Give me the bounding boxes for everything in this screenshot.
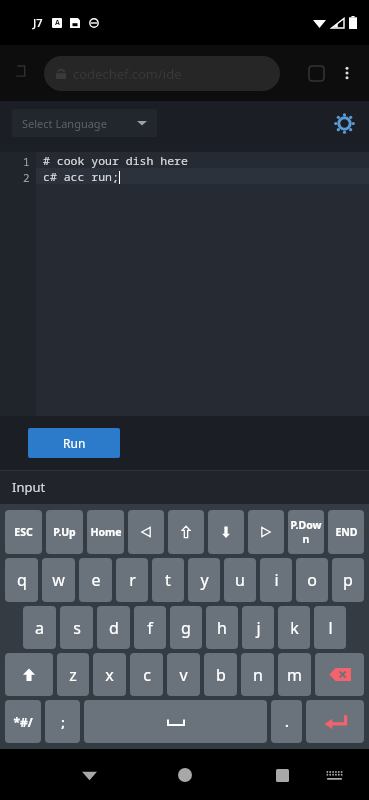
staticText: d	[109, 617, 119, 639]
button[interactable]: g	[170, 606, 202, 649]
button[interactable]: ;	[45, 700, 80, 743]
button[interactable]: .	[271, 700, 302, 743]
staticText: b	[216, 664, 226, 686]
staticText: codechef.com/ide	[73, 65, 182, 83]
staticText: v	[179, 664, 188, 686]
button[interactable]: Run	[28, 428, 120, 458]
button[interactable]: y	[188, 558, 220, 602]
button[interactable]: Left	[128, 510, 164, 554]
button[interactable]: END	[328, 510, 364, 554]
staticText: t	[165, 569, 171, 591]
button[interactable]: d	[97, 606, 130, 649]
button[interactable]: c	[130, 653, 163, 696]
button[interactable]: codechef.com/ide	[44, 56, 280, 91]
staticText: w	[52, 569, 65, 591]
button[interactable]: p	[332, 558, 364, 602]
button[interactable]: j	[242, 606, 274, 649]
button[interactable]: z	[57, 653, 89, 696]
button[interactable]: More options	[333, 59, 361, 87]
staticText: h	[217, 617, 227, 639]
staticText: p	[343, 569, 353, 591]
button[interactable]: m	[278, 653, 311, 696]
staticText: z	[69, 664, 77, 686]
staticText: J7	[33, 15, 43, 30]
staticText: Home	[90, 525, 122, 539]
staticText: s	[73, 617, 81, 639]
staticText: c# acc run;	[43, 169, 119, 185]
staticText: l	[328, 617, 333, 639]
button[interactable]: Switch keyboard	[319, 760, 349, 790]
staticText: i	[274, 569, 279, 591]
button[interactable]: r	[116, 558, 148, 602]
button[interactable]: f	[134, 606, 166, 649]
staticText: u	[235, 569, 245, 591]
staticText: a	[35, 617, 44, 639]
button[interactable]: Home	[168, 758, 202, 792]
staticText: A	[55, 18, 60, 28]
staticText: r	[129, 569, 136, 591]
button[interactable]: Right	[248, 510, 284, 554]
button[interactable]: h	[206, 606, 238, 649]
button[interactable]: P.Down	[288, 510, 324, 554]
button[interactable]: Recent apps	[265, 758, 299, 792]
staticText: k	[290, 617, 299, 639]
button[interactable]: Enter	[306, 700, 364, 743]
staticText: .	[285, 714, 289, 730]
staticText: n	[253, 664, 263, 686]
button[interactable]: w	[42, 558, 75, 602]
button[interactable]: t	[152, 558, 184, 602]
button[interactable]: l	[314, 606, 346, 649]
staticText: g	[181, 617, 191, 639]
staticText: j	[256, 617, 261, 639]
button[interactable]: v	[167, 653, 200, 696]
staticText: y	[200, 569, 209, 591]
staticText: x	[105, 664, 114, 686]
button[interactable]: e	[79, 558, 112, 602]
staticText: Select Language	[22, 116, 107, 131]
button[interactable]: Settings	[329, 108, 359, 138]
staticText: c	[143, 664, 151, 686]
button[interactable]: o	[296, 558, 328, 602]
button[interactable]: Select Language	[12, 109, 157, 137]
button[interactable]: Space	[84, 700, 267, 743]
button[interactable]: Hide keyboard	[72, 758, 106, 792]
button[interactable]: *#/	[5, 700, 41, 743]
staticText: # cook your dish here	[43, 153, 188, 169]
button[interactable]: q	[5, 558, 38, 602]
staticText: ESC	[14, 525, 33, 539]
staticText: m	[287, 664, 302, 686]
button[interactable]: i	[260, 558, 292, 602]
staticText: e	[91, 569, 101, 591]
button[interactable]: Shift	[5, 653, 53, 696]
button[interactable]: Home	[87, 510, 124, 554]
staticText: q	[17, 569, 27, 591]
staticText: o	[307, 569, 317, 591]
button[interactable]: x	[93, 653, 126, 696]
button[interactable]: Down	[208, 510, 244, 554]
button[interactable]: s	[60, 606, 93, 649]
staticText: Input	[12, 478, 46, 496]
button[interactable]: Tabs	[303, 60, 329, 86]
staticText: f	[147, 617, 153, 639]
button[interactable]: ESC	[5, 510, 42, 554]
button[interactable]: b	[204, 653, 237, 696]
staticText: P.Down	[288, 518, 324, 546]
staticText: 2	[23, 170, 30, 185]
staticText: ;	[61, 714, 65, 730]
staticText: Run	[63, 435, 86, 451]
staticText: P.Up	[53, 525, 76, 539]
button[interactable]: n	[241, 653, 274, 696]
button[interactable]: Up	[168, 510, 204, 554]
staticText: *#/	[13, 714, 33, 730]
button[interactable]: u	[224, 558, 256, 602]
staticText: 1	[23, 154, 30, 169]
button[interactable]: a	[23, 606, 56, 649]
button[interactable]: Backspace	[315, 653, 364, 696]
button[interactable]: k	[278, 606, 310, 649]
staticText: END	[335, 525, 358, 539]
button[interactable]: Home	[10, 60, 36, 86]
button[interactable]: P.Up	[46, 510, 83, 554]
